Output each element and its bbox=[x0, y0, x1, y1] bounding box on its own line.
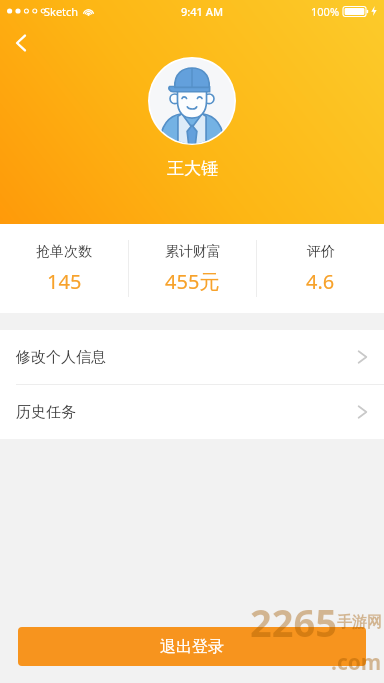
button[interactable]: 修改个人信息 bbox=[0, 330, 384, 384]
button[interactable]: 退出登录 bbox=[18, 627, 366, 666]
button[interactable]: Back bbox=[4, 26, 38, 60]
button[interactable]: 评价 bbox=[257, 224, 384, 313]
staticText: 手游网 bbox=[337, 613, 382, 632]
staticText: 修改个人信息 bbox=[16, 348, 106, 367]
button[interactable]: 累计财富 bbox=[129, 224, 256, 313]
staticText: Sketch bbox=[44, 4, 79, 19]
staticText: 历史任务 bbox=[16, 403, 76, 422]
staticText: 抢单次数 bbox=[36, 243, 92, 261]
staticText: .com bbox=[331, 648, 382, 677]
staticText: 2265 bbox=[250, 596, 337, 648]
staticText: 100% bbox=[311, 4, 340, 19]
button[interactable]: 抢单次数 bbox=[0, 224, 128, 313]
staticText: 退出登录 bbox=[160, 637, 224, 657]
staticText: 9:41 AM bbox=[181, 4, 224, 19]
staticText: 145 bbox=[47, 268, 82, 295]
staticText: 4.6 bbox=[306, 268, 335, 295]
staticText: 王大锤 bbox=[167, 158, 218, 179]
button[interactable]: 历史任务 bbox=[0, 385, 384, 439]
staticText: 评价 bbox=[307, 243, 335, 261]
staticText: 累计财富 bbox=[165, 243, 221, 261]
staticText: 455元 bbox=[165, 268, 220, 295]
